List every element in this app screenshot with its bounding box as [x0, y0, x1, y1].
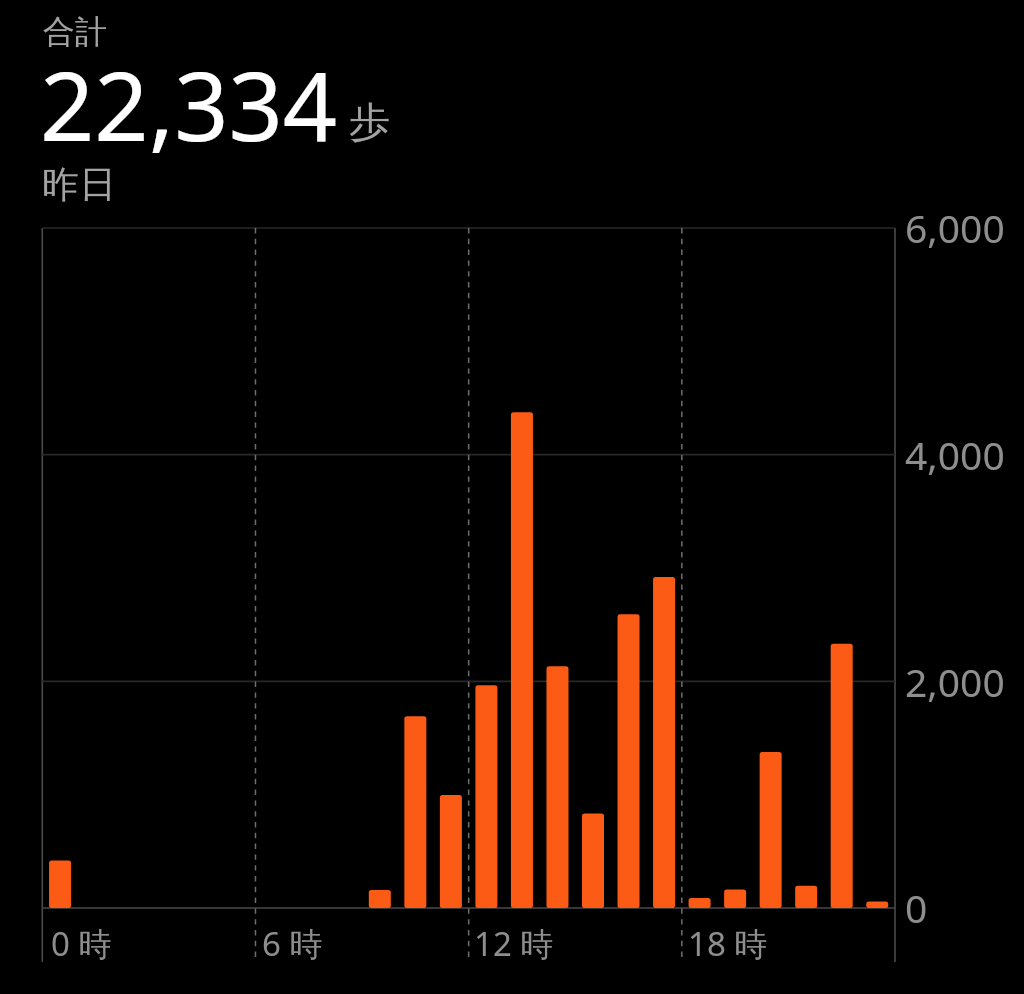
staticText: 4,000	[905, 428, 1005, 481]
staticText: 6 時	[262, 921, 323, 966]
staticText: 12 時	[474, 921, 554, 966]
button[interactable]: 合計 22,334 歩 昨日	[40, 6, 400, 206]
staticText: 18 時	[688, 921, 768, 966]
staticText: 昨日	[42, 161, 116, 208]
staticText: 0	[905, 881, 928, 934]
staticText: 歩	[349, 97, 390, 149]
staticText: 22,334	[40, 39, 338, 168]
staticText: 6,000	[905, 201, 1005, 254]
button[interactable]: 歩数グラフ 昨日	[42, 228, 895, 962]
staticText: 2,000	[905, 655, 1005, 708]
staticText: 0 時	[51, 921, 112, 966]
staticText: 合計	[43, 12, 107, 52]
